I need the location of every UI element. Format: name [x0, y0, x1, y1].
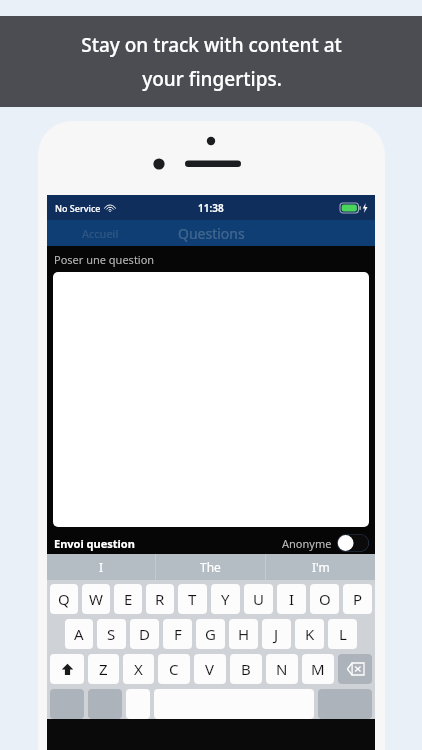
staticText: Questions	[178, 224, 245, 243]
staticText: Poser une question	[54, 252, 155, 267]
button[interactable]: V	[194, 654, 226, 684]
staticText: K	[305, 624, 315, 644]
staticText: I	[99, 559, 104, 575]
button[interactable]: R	[146, 584, 174, 614]
button[interactable]: N	[266, 654, 298, 684]
staticText: S	[107, 624, 116, 644]
button[interactable]: Emoji	[88, 689, 122, 719]
button[interactable]: Y	[211, 584, 240, 614]
button[interactable]: O	[310, 584, 339, 614]
staticText: N	[276, 659, 288, 679]
button[interactable]: Shift	[50, 654, 84, 684]
button[interactable]: K	[295, 619, 324, 649]
staticText: D	[139, 624, 150, 644]
button[interactable]: X	[123, 654, 154, 684]
button[interactable]: Z	[88, 654, 119, 684]
staticText: I	[289, 589, 295, 609]
button[interactable]: Q	[50, 584, 78, 614]
staticText: Anonyme	[282, 536, 332, 551]
button[interactable]: C	[158, 654, 190, 684]
staticText: 11:38	[198, 201, 224, 215]
button[interactable]: M	[302, 654, 334, 684]
button[interactable]: H	[229, 619, 258, 649]
staticText: The	[200, 559, 221, 575]
button[interactable]: Backspace	[338, 654, 372, 684]
button[interactable]: B	[230, 654, 262, 684]
button[interactable]: J	[262, 619, 291, 649]
button[interactable]: Envoi question	[54, 536, 135, 551]
button[interactable]: U	[244, 584, 273, 614]
staticText: E	[124, 589, 133, 609]
button[interactable]: Anonyme toggle	[337, 534, 369, 552]
staticText: C	[169, 659, 179, 679]
button[interactable]: I	[277, 584, 306, 614]
staticText: A	[74, 624, 84, 644]
staticText: T	[188, 589, 197, 609]
button[interactable]: The	[156, 554, 265, 580]
button[interactable]: A	[65, 619, 93, 649]
staticText: V	[205, 659, 215, 679]
staticText: Y	[221, 589, 230, 609]
staticText: your fingertips.	[142, 66, 282, 92]
staticText: H	[238, 624, 250, 644]
button[interactable]: Numbers	[50, 689, 84, 719]
staticText: Z	[99, 659, 108, 679]
staticText: J	[274, 624, 279, 644]
button[interactable]: T	[178, 584, 207, 614]
button[interactable]: I	[47, 554, 155, 580]
button[interactable]: L	[328, 619, 357, 649]
staticText: I'm	[312, 559, 330, 575]
button[interactable]: Accueil	[47, 220, 153, 246]
button[interactable]: Questions	[153, 220, 269, 246]
staticText: M	[311, 659, 325, 679]
staticText: Q	[58, 589, 70, 609]
staticText: Stay on track with content at	[81, 32, 342, 58]
button[interactable]: W	[82, 584, 110, 614]
staticText: L	[339, 624, 347, 644]
staticText: F	[174, 624, 182, 644]
button[interactable]: P	[343, 584, 372, 614]
button[interactable]	[53, 272, 369, 527]
staticText: W	[89, 589, 103, 609]
button[interactable]: G	[196, 619, 225, 649]
staticText: No Service	[55, 202, 101, 214]
button[interactable]: D	[130, 619, 159, 649]
staticText: P	[353, 589, 363, 609]
staticText: G	[205, 624, 216, 644]
staticText: X	[134, 659, 143, 679]
staticText: B	[241, 659, 251, 679]
button[interactable]: F	[163, 619, 192, 649]
staticText: Accueil	[82, 226, 119, 241]
button[interactable]: Dictation	[126, 689, 150, 719]
button[interactable]: E	[114, 584, 142, 614]
button[interactable]: S	[97, 619, 126, 649]
staticText: R	[155, 589, 165, 609]
staticText: U	[253, 589, 264, 609]
staticText: O	[319, 589, 331, 609]
button[interactable]: I'm	[266, 554, 375, 580]
